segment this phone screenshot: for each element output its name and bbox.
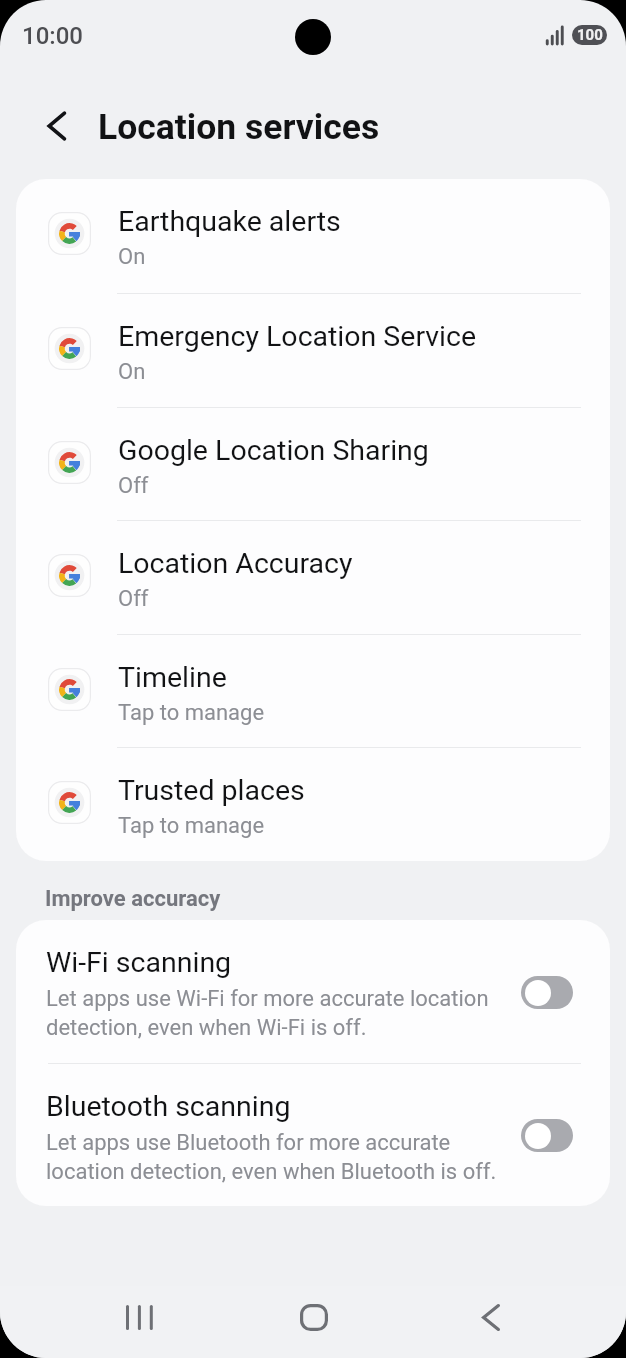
button[interactable]: Toggle off [521, 1119, 573, 1152]
staticText: Wi-Fi scanning [46, 946, 232, 979]
staticText: Location Accuracy [118, 547, 353, 580]
staticText: Google Location Sharing [118, 434, 429, 467]
staticText: Trusted places [118, 774, 305, 807]
button[interactable]: Earthquake alerts [16, 179, 610, 294]
button[interactable]: Location Accuracy [16, 521, 610, 635]
staticText: Bluetooth scanning [46, 1090, 291, 1123]
button[interactable]: Toggle off [521, 976, 573, 1009]
staticText: Tap to manage [118, 700, 265, 726]
staticText: On [118, 359, 146, 385]
staticText: 10:00 [22, 22, 83, 50]
staticText: Earthquake alerts [118, 205, 341, 238]
button[interactable]: Google Location Sharing [16, 408, 610, 521]
staticText: Timeline [118, 661, 227, 694]
staticText: Emergency Location Service [118, 320, 477, 353]
button[interactable]: Timeline [16, 635, 610, 748]
staticText: Let apps use Wi-Fi for more accurate loc… [46, 986, 498, 1040]
staticText: Tap to manage [118, 813, 265, 839]
staticText: Improve accuracy [45, 886, 221, 912]
button[interactable]: Recent apps [100, 1281, 178, 1353]
staticText: On [118, 244, 146, 270]
button[interactable]: Back [452, 1281, 530, 1353]
staticText: 100 [577, 26, 603, 44]
button[interactable]: Home [275, 1281, 353, 1353]
staticText: Location services [98, 106, 380, 148]
staticText: Off [118, 473, 149, 499]
button[interactable]: Navigate up [29, 98, 85, 154]
button[interactable]: Wi-Fi scanning [16, 920, 610, 1064]
staticText: Off [118, 586, 149, 612]
staticText: Let apps use Bluetooth for more accurate… [46, 1130, 498, 1184]
button[interactable]: Emergency Location Service [16, 294, 610, 408]
button[interactable]: Trusted places [16, 748, 610, 861]
button[interactable]: Bluetooth scanning [16, 1064, 610, 1206]
